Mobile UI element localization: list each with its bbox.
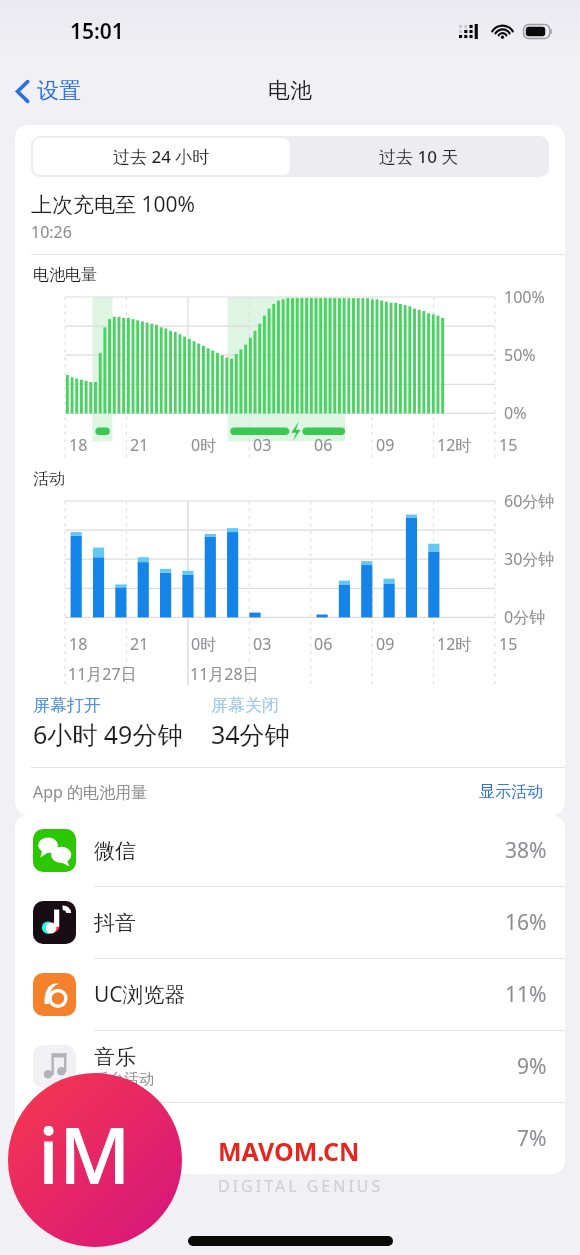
staticText: UC浏览器	[94, 980, 186, 1009]
staticText: App 的电池用量	[33, 781, 148, 803]
staticText: 09	[376, 633, 395, 655]
staticText: 34分钟	[211, 717, 290, 751]
staticText: 上次充电至 100%	[31, 190, 195, 219]
staticText: 06	[314, 633, 333, 655]
staticText: 09	[376, 434, 395, 456]
staticText: 03	[253, 434, 272, 456]
button[interactable]: 显示活动	[475, 778, 547, 806]
staticText: 9%	[517, 1052, 547, 1081]
button[interactable]: 视频	[15, 1103, 565, 1174]
staticText: 屏幕打开	[33, 695, 101, 716]
staticText: DIGITAL GENIUS	[218, 1175, 384, 1197]
staticText: 15	[499, 434, 518, 456]
staticText: 微信	[94, 838, 136, 864]
staticText: 15	[499, 633, 518, 655]
button[interactable]: 抖音	[15, 887, 565, 959]
staticText: 18	[69, 633, 88, 655]
staticText: 显示活动	[479, 782, 543, 802]
staticText: 0时	[191, 434, 217, 456]
staticText: 0时	[191, 633, 217, 655]
staticText: 0分钟	[504, 606, 546, 628]
staticText: 60分钟	[504, 490, 555, 512]
staticText: 50%	[504, 344, 536, 366]
staticText: 11%	[505, 980, 547, 1009]
staticText: 电池电量	[33, 265, 97, 285]
button[interactable]: 音乐	[15, 1031, 565, 1103]
button[interactable]: 过去 10 天	[290, 138, 547, 175]
staticText: 06	[314, 434, 333, 456]
staticText: 30分钟	[504, 548, 555, 570]
staticText: 0%	[504, 402, 527, 424]
staticText: 6小时 49分钟	[33, 717, 183, 751]
staticText: 21	[130, 633, 149, 655]
staticText: iM	[38, 1101, 131, 1207]
staticText: 电池	[268, 77, 312, 105]
staticText: 12时	[437, 434, 472, 456]
staticText: 21	[130, 434, 149, 456]
staticText: 屏幕关闭	[211, 695, 279, 716]
button[interactable]: 设置	[0, 69, 93, 113]
staticText: 过去 10 天	[379, 145, 459, 168]
staticText: 7%	[517, 1124, 547, 1153]
staticText: 03	[253, 633, 272, 655]
button[interactable]: 微信	[15, 815, 565, 887]
staticText: 音乐	[94, 1044, 136, 1070]
staticText: 抖音	[94, 910, 136, 936]
staticText: 活动	[33, 469, 65, 489]
staticText: 16%	[505, 908, 547, 937]
staticText: 视频	[94, 1126, 136, 1152]
staticText: 过去 24 小时	[113, 145, 210, 168]
staticText: 100%	[504, 286, 545, 308]
button[interactable]: UC浏览器	[15, 959, 565, 1031]
button[interactable]: 过去 24 小时	[33, 138, 290, 175]
staticText: 后台活动	[94, 1070, 154, 1089]
staticText: 设置	[37, 77, 81, 105]
staticText: 10:26	[31, 221, 72, 243]
staticText: 38%	[505, 836, 547, 865]
staticText: MAVOM.CN	[218, 1134, 360, 1168]
staticText: 12时	[437, 633, 472, 655]
staticText: 11月28日	[190, 663, 259, 685]
staticText: 11月27日	[68, 663, 137, 685]
staticText: 15:01	[70, 17, 124, 46]
staticText: 18	[69, 434, 88, 456]
